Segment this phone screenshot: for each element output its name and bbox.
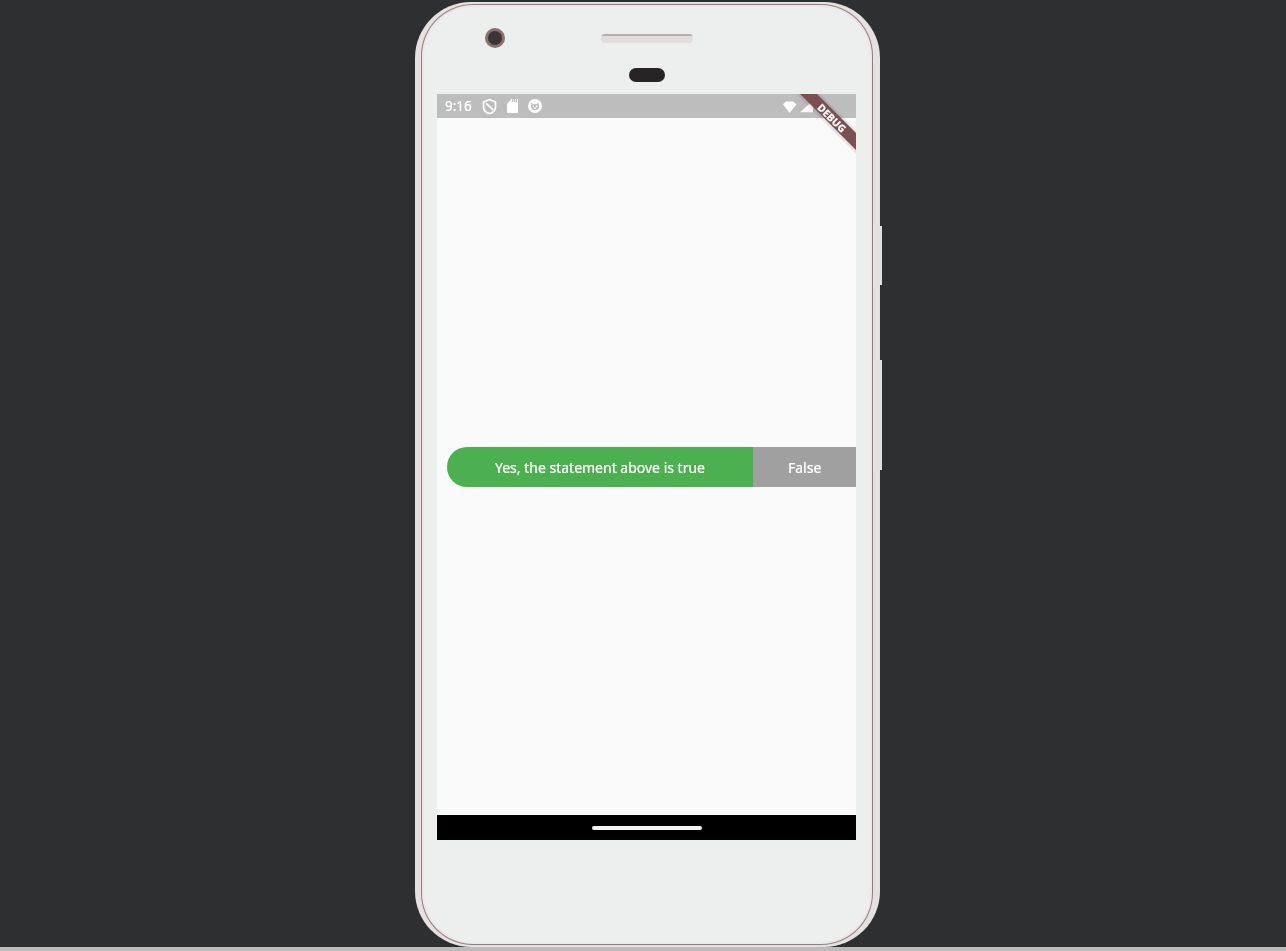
button[interactable]: False	[753, 447, 856, 487]
staticText: DEBUG	[814, 100, 850, 136]
staticText: 9:16	[445, 97, 472, 115]
staticText: False	[788, 458, 822, 477]
staticText: Yes, the statement above is true	[495, 458, 705, 477]
button[interactable]: Home	[592, 826, 702, 830]
button[interactable]: Yes, the statement above is true	[447, 447, 753, 487]
